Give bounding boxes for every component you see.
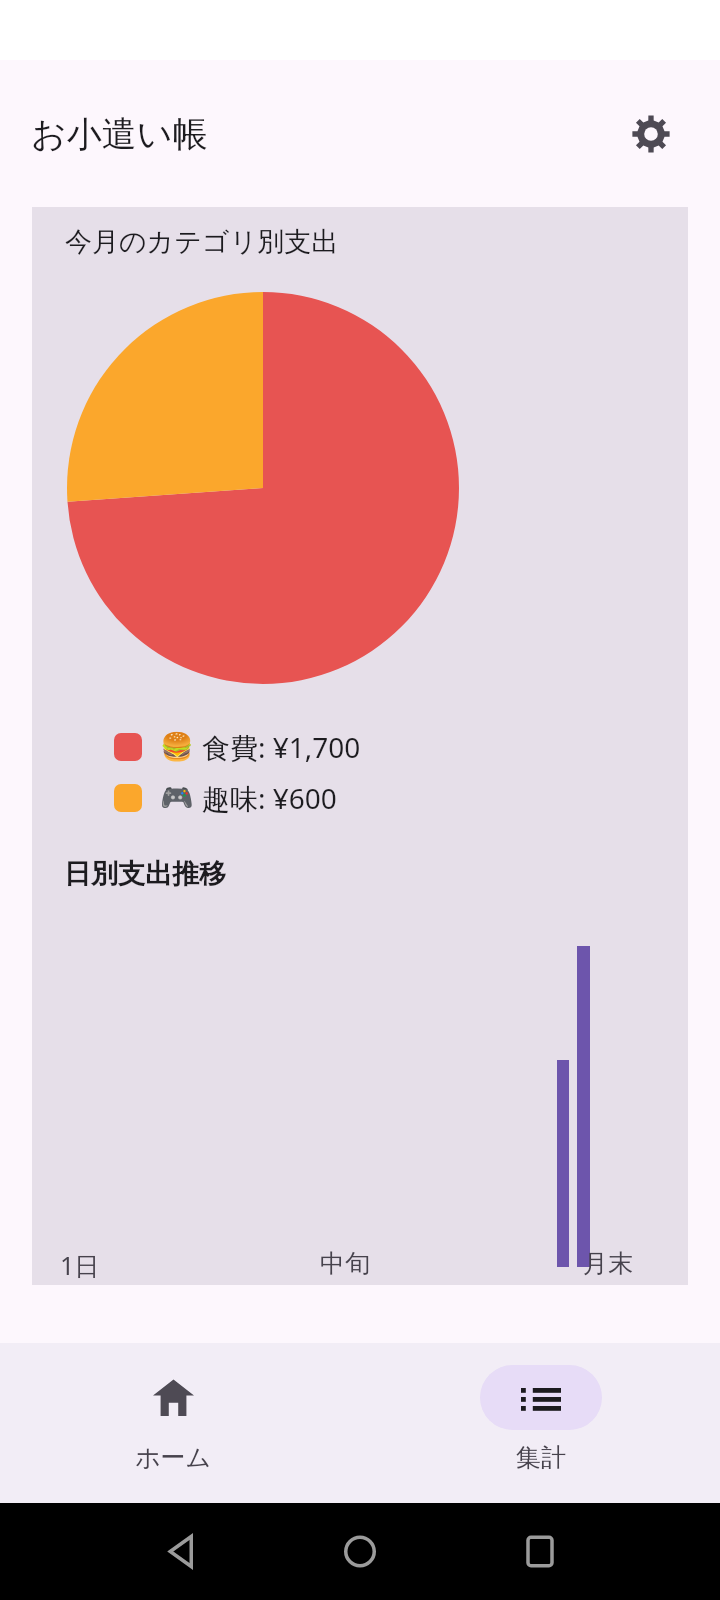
staticText: 今月のカテゴリ別支出 — [65, 225, 339, 259]
button[interactable]: Summary — [480, 1365, 602, 1473]
staticText: 趣味: ¥600 — [202, 779, 337, 817]
button[interactable]: 🍔 — [114, 728, 361, 766]
button[interactable]: Home — [112, 1365, 234, 1473]
staticText: ホーム — [135, 1442, 212, 1473]
staticText: 月末 — [583, 1248, 633, 1279]
staticText: 🍔 — [160, 731, 194, 763]
button[interactable]: Settings — [627, 110, 675, 158]
staticText: 1日 — [60, 1248, 100, 1282]
staticText: 🎮 — [160, 782, 194, 814]
staticText: 日別支出推移 — [64, 857, 226, 891]
staticText: 食費: ¥1,700 — [202, 728, 361, 766]
button[interactable]: 🎮 — [114, 779, 337, 817]
staticText: お小遣い帳 — [31, 112, 208, 156]
staticText: 中旬 — [320, 1248, 370, 1279]
staticText: 集計 — [516, 1442, 566, 1473]
